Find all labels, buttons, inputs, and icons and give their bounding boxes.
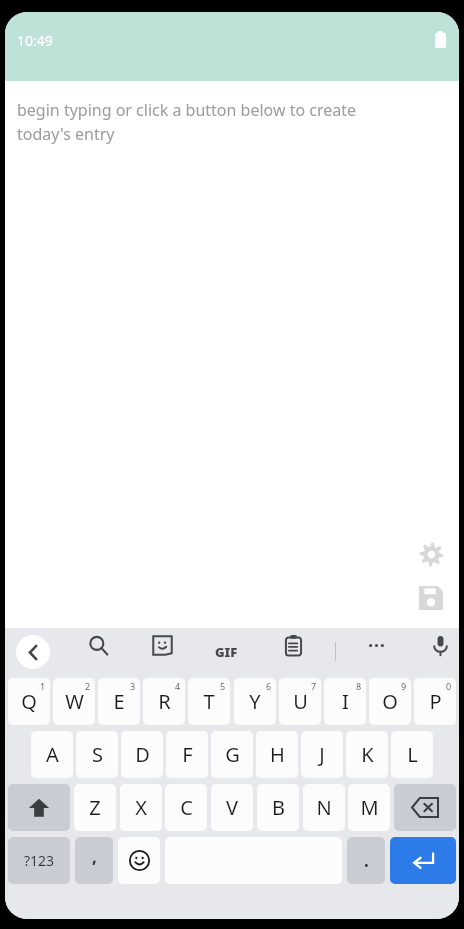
staticText: 7 <box>311 680 317 692</box>
button[interactable]: G <box>211 731 253 778</box>
button[interactable]: E <box>98 678 140 725</box>
button[interactable]: C <box>165 784 207 831</box>
button[interactable]: F <box>166 731 208 778</box>
button[interactable]: . <box>347 837 385 884</box>
button[interactable]: Backspace <box>394 784 456 831</box>
staticText: Q <box>21 688 37 715</box>
staticText: Y <box>249 688 261 715</box>
staticText: L <box>407 741 418 768</box>
staticText: 1 <box>40 680 46 692</box>
staticText: J <box>319 741 325 768</box>
staticText: U <box>293 688 308 715</box>
button[interactable]: Enter <box>390 837 456 884</box>
staticText: ?123 <box>24 851 55 870</box>
button[interactable]: Shift <box>8 784 70 831</box>
staticText: 6 <box>266 680 272 692</box>
staticText: Z <box>89 794 101 821</box>
button[interactable]: D <box>121 731 163 778</box>
staticText: X <box>135 794 147 821</box>
button[interactable]: Z <box>74 784 116 831</box>
staticText: C <box>180 794 193 821</box>
button[interactable]: P <box>414 678 456 725</box>
button[interactable]: X <box>120 784 162 831</box>
button[interactable]: Y <box>234 678 276 725</box>
button[interactable]: Emoji <box>118 837 160 884</box>
staticText: 5 <box>220 680 226 692</box>
staticText: G <box>225 741 240 768</box>
staticText: 0 <box>446 680 452 692</box>
button[interactable]: Save <box>415 582 447 614</box>
button[interactable]: More options <box>359 628 393 662</box>
staticText: O <box>382 688 398 715</box>
staticText: 4 <box>175 680 181 692</box>
button[interactable]: H <box>256 731 298 778</box>
button[interactable]: I <box>324 678 366 725</box>
staticText: N <box>316 794 332 821</box>
button[interactable]: B <box>257 784 299 831</box>
button[interactable]: K <box>346 731 388 778</box>
button[interactable]: Settings <box>415 538 447 570</box>
staticText: V <box>226 794 238 821</box>
button[interactable]: U <box>279 678 321 725</box>
button[interactable]: R <box>143 678 185 725</box>
staticText: M <box>360 794 379 821</box>
button[interactable]: Stickers <box>145 628 179 662</box>
staticText: K <box>361 741 374 768</box>
button[interactable]: J <box>301 731 343 778</box>
button[interactable]: S <box>76 731 118 778</box>
button[interactable]: Back <box>16 635 50 669</box>
button[interactable]: Voice input <box>423 628 457 662</box>
staticText: E <box>113 688 125 715</box>
button[interactable]: GIF <box>209 635 243 669</box>
staticText: 8 <box>356 680 362 692</box>
button[interactable]: begin typing or click a button below to … <box>17 99 459 145</box>
button[interactable]: V <box>211 784 253 831</box>
staticText: S <box>92 741 103 768</box>
staticText: 2 <box>85 680 91 692</box>
staticText: . <box>364 849 369 872</box>
button[interactable]: L <box>391 731 433 778</box>
staticText: GIF <box>215 643 238 661</box>
staticText: F <box>182 741 193 768</box>
staticText: , <box>92 845 97 868</box>
button[interactable]: Search <box>81 628 115 662</box>
staticText: T <box>203 688 215 715</box>
button[interactable]: A <box>31 731 73 778</box>
staticText: B <box>272 794 285 821</box>
staticText: 3 <box>130 680 136 692</box>
button[interactable]: , <box>75 837 113 884</box>
button[interactable]: W <box>53 678 95 725</box>
staticText: R <box>158 688 171 715</box>
button[interactable]: Q <box>8 678 50 725</box>
button[interactable]: Clipboard <box>276 628 310 662</box>
staticText: D <box>135 741 150 768</box>
button[interactable]: M <box>348 784 390 831</box>
button[interactable]: N <box>303 784 345 831</box>
staticText: H <box>270 741 285 768</box>
button[interactable]: ?123 <box>8 837 70 884</box>
button[interactable]: T <box>188 678 230 725</box>
button[interactable]: O <box>369 678 411 725</box>
staticText: I <box>342 688 349 715</box>
staticText: W <box>65 688 84 715</box>
staticText: 10:49 <box>17 31 53 50</box>
staticText: P <box>429 688 442 715</box>
staticText: A <box>46 741 59 768</box>
staticText: 9 <box>401 680 407 692</box>
